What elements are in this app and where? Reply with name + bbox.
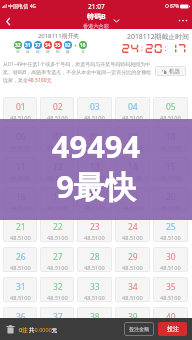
staticText: 从01~49中任选1个或多个号码，所选号码与开奖号码特码相同为中奖。特码B，高赔… <box>3 61 155 83</box>
staticText: 狗 <box>56 50 60 55</box>
staticText: 02 <box>53 101 63 113</box>
staticText: 36 <box>16 311 26 323</box>
staticText: 16 <box>16 191 26 203</box>
staticText: 中国电信 <box>8 3 28 9</box>
button[interactable]: 特码B <box>83 12 109 29</box>
button[interactable]: Back <box>0 13 16 29</box>
staticText: 48.5100 <box>122 234 143 242</box>
button[interactable]: 35 <box>153 277 188 302</box>
staticText: 35 <box>55 42 61 48</box>
button[interactable]: 07 <box>40 127 74 152</box>
button[interactable]: 34 <box>115 277 150 302</box>
button[interactable]: 29 <box>115 247 150 272</box>
button[interactable]: 21 <box>3 217 37 242</box>
button[interactable]: 37 <box>40 307 74 332</box>
staticText: 32 <box>15 42 21 48</box>
button[interactable]: 03 <box>77 97 112 122</box>
button[interactable]: 投注金额 <box>124 322 154 336</box>
staticText: 48.5100 <box>160 114 181 122</box>
staticText: 48.5100 <box>84 234 105 242</box>
staticText: 22 <box>53 221 63 233</box>
button[interactable]: More options <box>174 12 192 29</box>
button[interactable]: 09 <box>115 127 150 152</box>
button[interactable]: 01 <box>3 97 37 122</box>
button[interactable]: 33 <box>77 277 112 302</box>
staticText: 29 <box>128 251 138 263</box>
button[interactable]: 31 <box>3 277 37 302</box>
button[interactable]: 12 <box>40 157 74 182</box>
button[interactable]: 02 <box>40 97 74 122</box>
staticText: 31 <box>16 281 26 293</box>
button[interactable]: 18 <box>77 187 112 212</box>
staticText: 20 <box>166 191 176 203</box>
staticText: 特码B <box>87 12 106 22</box>
button[interactable]: 39 <box>115 307 150 332</box>
staticText: 02 <box>65 42 71 48</box>
staticText: 48.5100 <box>47 234 68 242</box>
button[interactable]: 26 <box>3 247 37 272</box>
button[interactable]: 17 <box>40 187 74 212</box>
staticText: 鼠 <box>36 50 40 55</box>
button[interactable]: 24 <box>115 217 150 242</box>
button[interactable]: 05 <box>153 97 188 122</box>
staticText: 40 <box>166 311 176 323</box>
button[interactable]: Clear selection <box>5 324 16 335</box>
button[interactable]: 36 <box>3 307 37 332</box>
staticText: 05 <box>166 101 176 113</box>
staticText: 31 <box>25 42 31 48</box>
staticText: 01 <box>16 101 26 113</box>
staticText: 香港六合彩 <box>83 23 109 29</box>
button[interactable]: 机选 <box>155 66 186 76</box>
button[interactable]: 19 <box>115 187 150 212</box>
staticText: 48.5100 <box>47 294 68 302</box>
button[interactable]: 08 <box>77 127 112 152</box>
staticText: 48.5100 <box>160 264 181 272</box>
staticText: 猴 <box>66 50 70 55</box>
button[interactable]: 13 <box>77 157 112 182</box>
button[interactable]: 投注 <box>158 322 187 336</box>
staticText: 67% <box>170 3 179 9</box>
staticText: 机选 <box>169 68 180 75</box>
staticText: 23 <box>90 221 100 233</box>
staticText: 48.5100 <box>10 234 31 242</box>
button[interactable]: 27 <box>40 247 74 272</box>
staticText: 兔 <box>26 50 30 55</box>
button[interactable]: 22 <box>40 217 74 242</box>
staticText: 28 <box>90 251 100 263</box>
staticText: 48.5100 <box>10 324 31 332</box>
staticText: 06 <box>16 131 26 143</box>
button[interactable]: 14 <box>115 157 150 182</box>
staticText: 39 <box>128 311 138 323</box>
button[interactable]: 23 <box>77 217 112 242</box>
staticText: 48.5100 <box>84 144 105 152</box>
staticText: 48.5100 <box>10 294 31 302</box>
button[interactable]: 25 <box>153 217 188 242</box>
staticText: 33 <box>90 281 100 293</box>
button[interactable]: 40 <box>153 307 188 332</box>
staticText: 34 <box>128 281 138 293</box>
staticText: 2018112期截止时间 <box>127 32 190 41</box>
staticText: 37 <box>35 42 41 48</box>
button[interactable]: 30 <box>153 247 188 272</box>
button[interactable]: 32 <box>40 277 74 302</box>
button[interactable]: 04 <box>115 97 150 122</box>
staticText: 38 <box>90 311 100 323</box>
button[interactable]: 28 <box>77 247 112 272</box>
staticText: 30 <box>166 251 176 263</box>
staticText: 48.5100 <box>160 324 181 332</box>
button[interactable]: 38 <box>77 307 112 332</box>
staticText: 37 <box>53 311 63 323</box>
staticText: 19 <box>128 191 138 203</box>
staticText: 494949最快 <box>44 125 148 208</box>
